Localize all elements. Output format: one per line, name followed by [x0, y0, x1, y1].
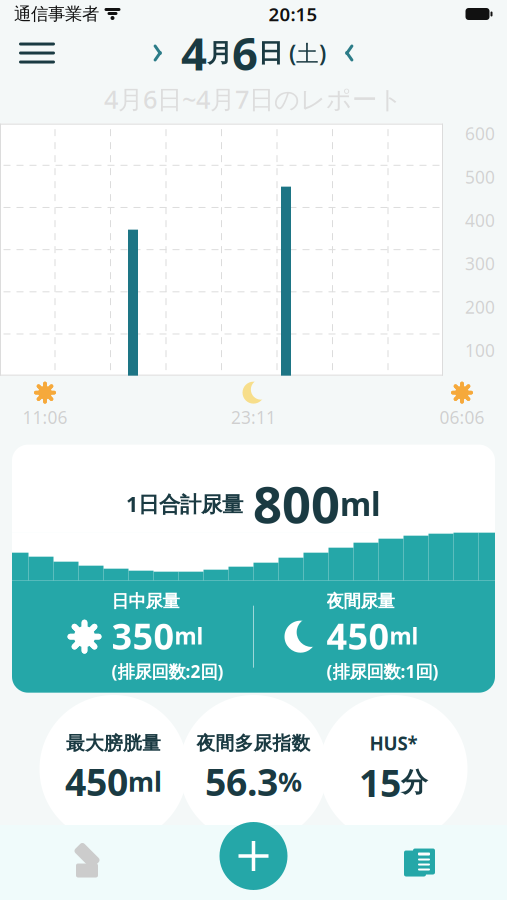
- staticText: 通信事業者: [14, 3, 99, 25]
- staticText: ml: [128, 764, 162, 799]
- staticText: 800: [253, 470, 340, 537]
- staticText: 日中尿量: [111, 591, 179, 612]
- staticText: 1日合計尿量: [126, 489, 243, 518]
- staticText: 最大膀胱量: [66, 732, 161, 755]
- staticText: ml: [174, 621, 203, 651]
- staticText: 300: [465, 252, 495, 275]
- staticText: 11:06: [22, 406, 67, 429]
- staticText: %: [278, 764, 302, 799]
- button[interactable]: Add entry: [219, 822, 287, 890]
- staticText: 450: [326, 612, 389, 660]
- staticText: 100: [465, 339, 495, 362]
- staticText: 分: [401, 766, 428, 799]
- staticText: 56.3: [205, 757, 278, 806]
- staticText: 400: [465, 209, 495, 232]
- staticText: 200: [465, 295, 495, 318]
- button[interactable]: Home: [42, 825, 132, 900]
- staticText: 4月6日~4月7日のレポート: [104, 82, 403, 116]
- staticText: 350: [111, 612, 174, 660]
- staticText: 夜間尿量: [326, 591, 394, 612]
- staticText: (排尿回数:1回): [326, 660, 438, 683]
- staticText: 15: [359, 758, 401, 807]
- staticText: 6: [232, 23, 258, 83]
- staticText: 500: [465, 165, 495, 188]
- button[interactable]: Next day: [336, 40, 358, 66]
- staticText: 06:06: [439, 406, 484, 429]
- staticText: 600: [465, 122, 495, 145]
- staticText: 450: [65, 757, 128, 806]
- staticText: ml: [389, 621, 418, 651]
- button[interactable]: Reports: [375, 825, 465, 900]
- staticText: 23:11: [231, 406, 276, 429]
- staticText: 4: [181, 23, 207, 83]
- button[interactable]: Menu: [10, 31, 64, 75]
- staticText: 夜間多尿指数: [196, 732, 310, 755]
- staticText: (土): [283, 38, 326, 68]
- staticText: 日: [258, 37, 283, 68]
- staticText: (排尿回数:2回): [111, 660, 223, 683]
- staticText: 月: [207, 37, 232, 68]
- staticText: HUS*: [369, 731, 417, 756]
- staticText: 20:15: [268, 2, 317, 26]
- staticText: ml: [340, 482, 381, 525]
- button[interactable]: Previous day: [149, 40, 171, 66]
